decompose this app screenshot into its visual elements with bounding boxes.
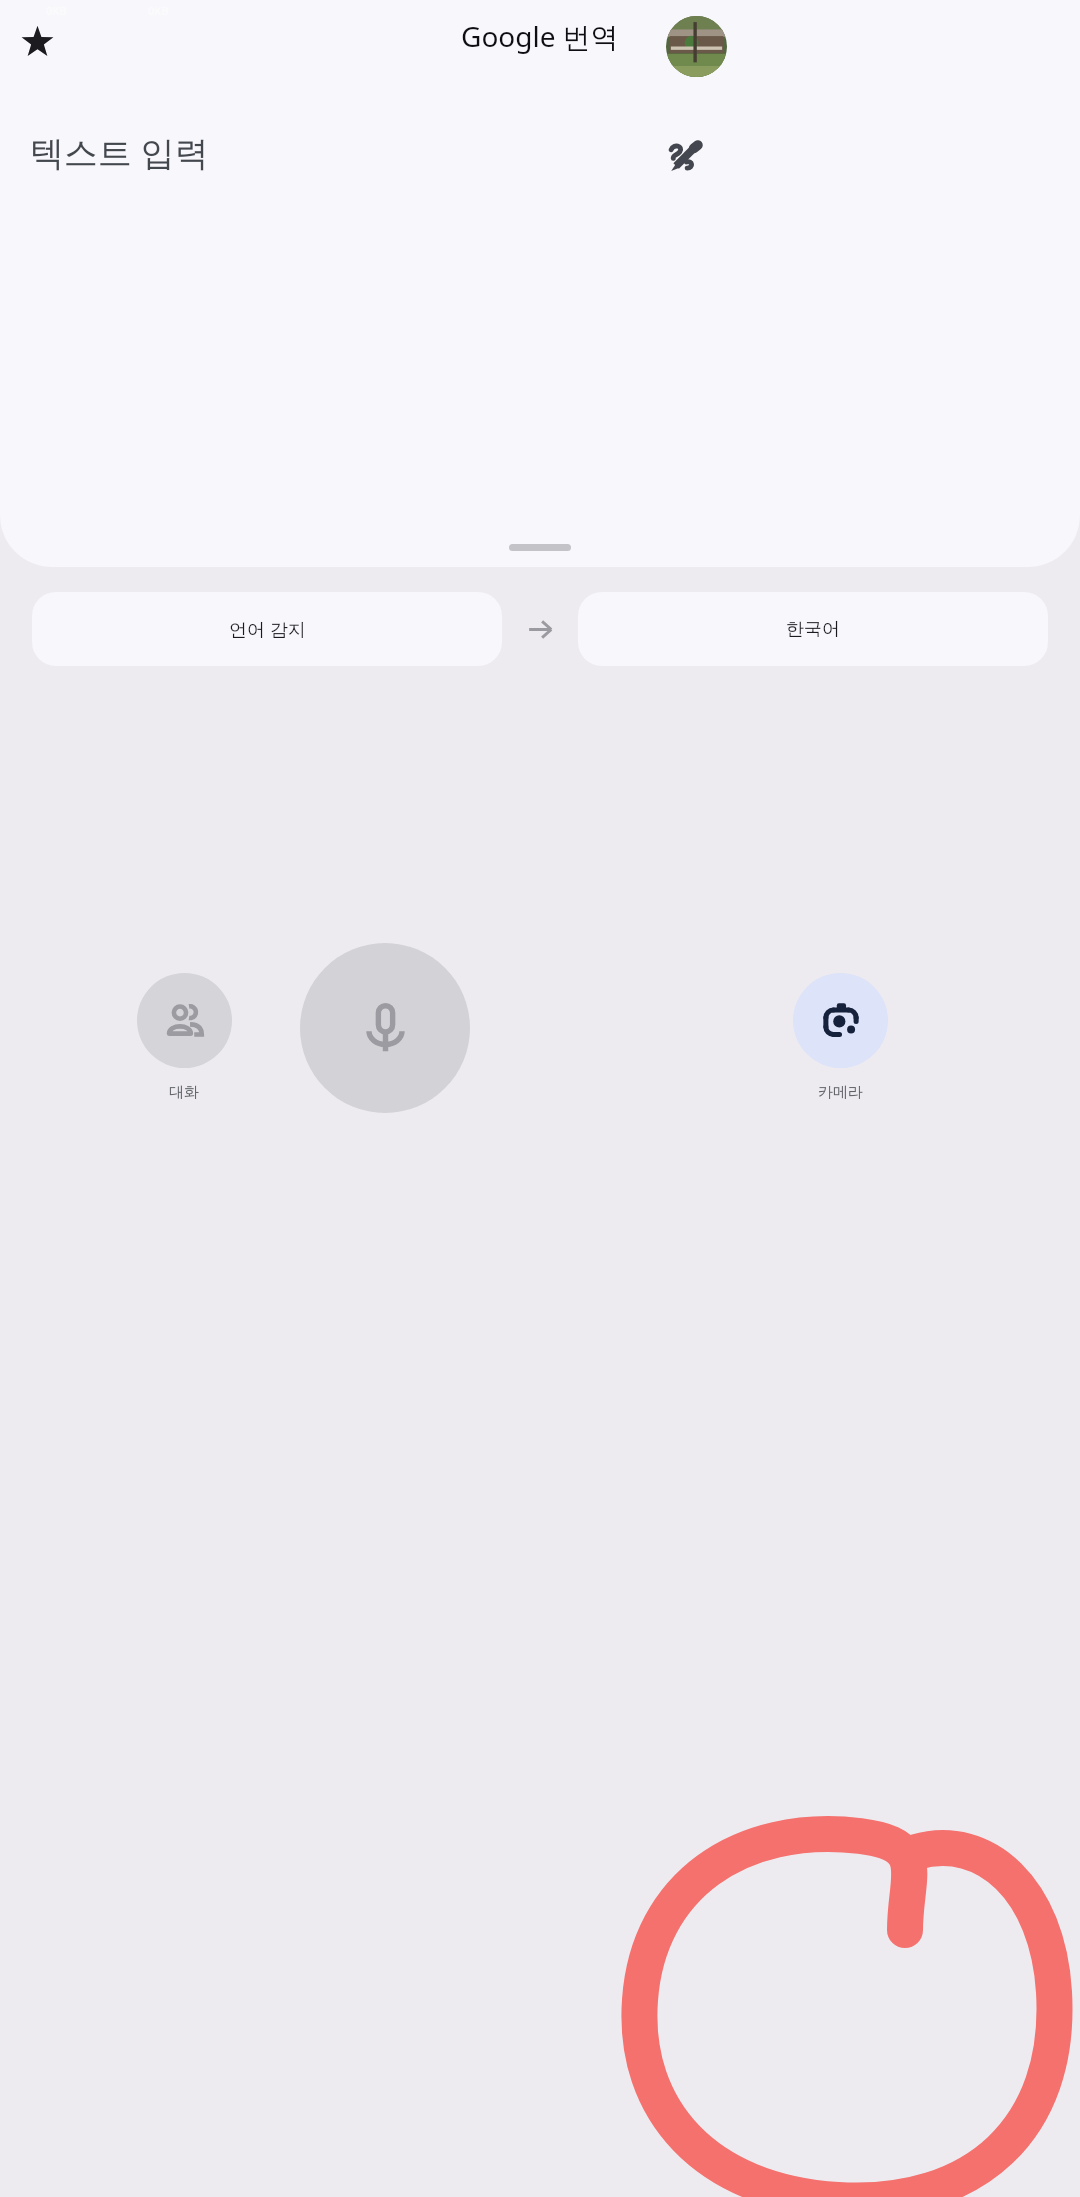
staticText: 대화 [169,1083,199,1102]
button[interactable]: 언어 감지 [32,592,502,666]
button[interactable]: Voice translate [300,943,470,1113]
staticText: 카메라 [818,1083,863,1102]
button[interactable]: 대화 [104,973,264,1102]
staticText: 언어 감지 [229,617,306,642]
button[interactable]: 한국어 [578,592,1048,666]
button[interactable]: 카메라 [760,973,920,1102]
button[interactable]: Saved translations [9,13,65,69]
button[interactable]: 텍스트 입력 [30,129,209,175]
staticText: Google 번역 [461,17,619,55]
staticText: 한국어 [786,618,840,641]
button[interactable]: Handwriting input [651,127,715,191]
button[interactable]: Account [666,16,727,77]
